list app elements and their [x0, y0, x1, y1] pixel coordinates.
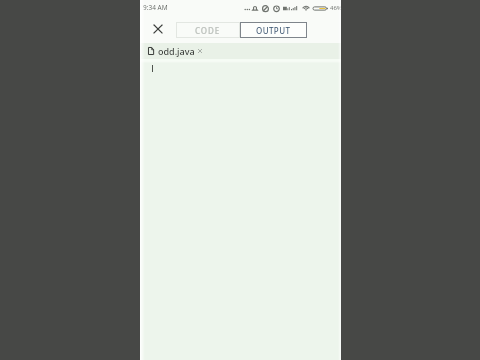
staticText: 9:34 AM	[143, 3, 168, 12]
staticText: OUTPUT	[256, 25, 291, 36]
button[interactable]: OUTPUT	[240, 22, 307, 38]
button[interactable]: odd.java	[148, 45, 202, 57]
button[interactable]: Close odd.java	[198, 49, 202, 53]
staticText: CODE	[195, 25, 221, 36]
staticText: odd.java	[158, 45, 195, 57]
staticText: 46%	[330, 4, 342, 12]
button[interactable]: CODE	[176, 22, 240, 38]
button[interactable]: Close	[148, 19, 168, 39]
